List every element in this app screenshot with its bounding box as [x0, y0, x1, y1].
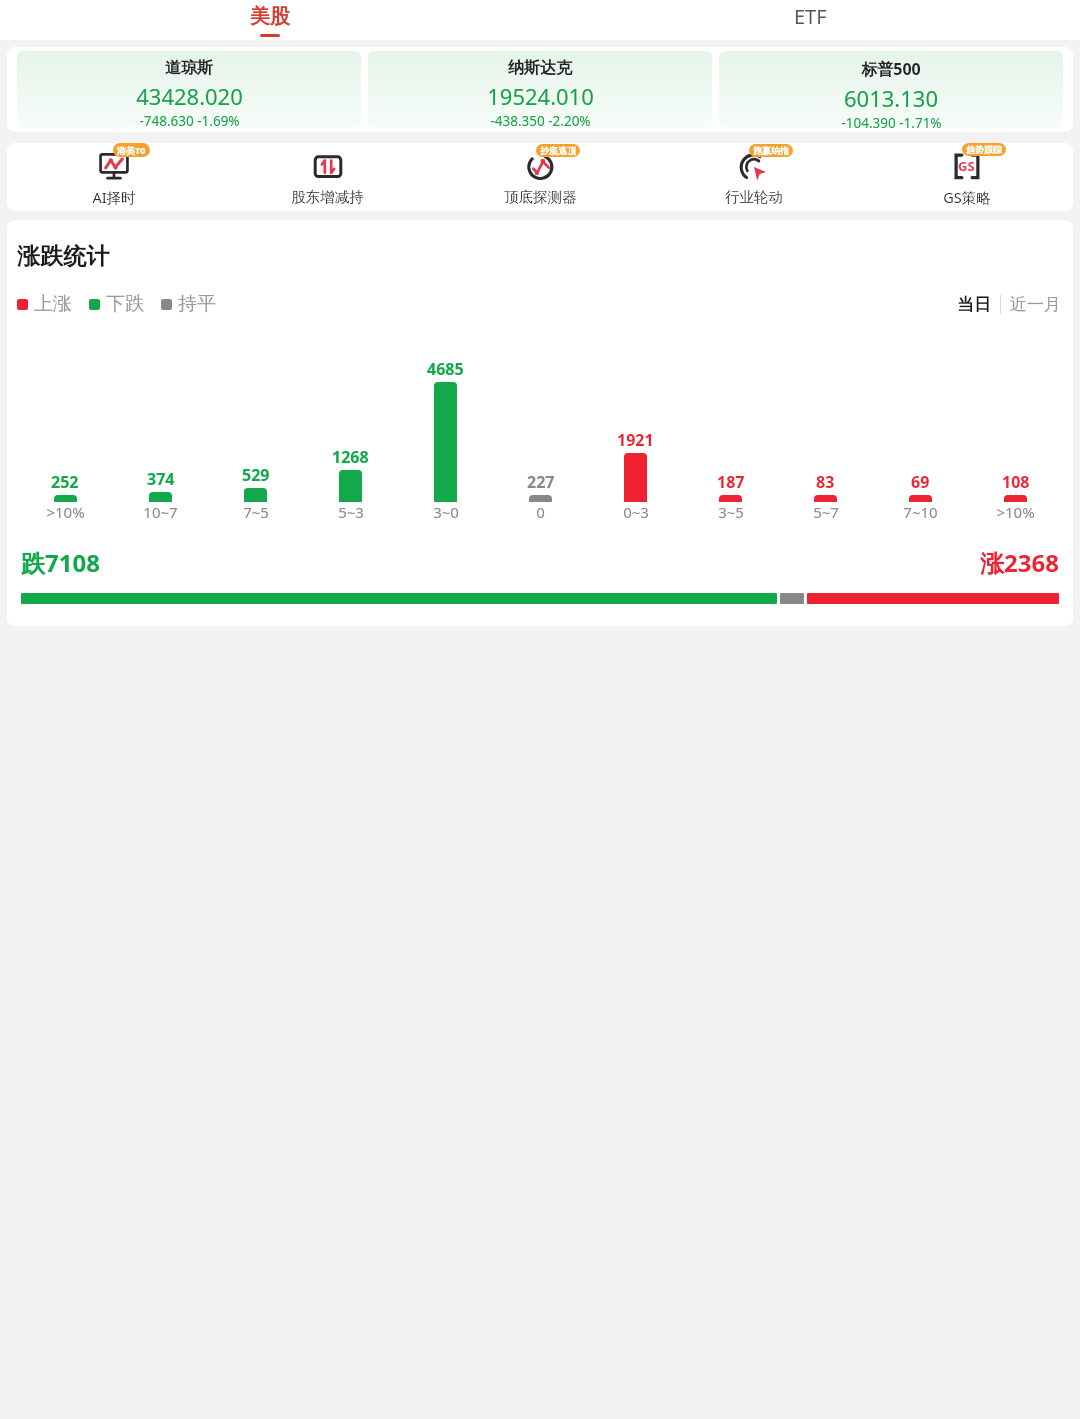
staticText: 趋势跟踪 [966, 144, 1002, 155]
staticText: 涨2368 [980, 546, 1059, 579]
staticText: 行业轮动 [725, 188, 783, 206]
staticText: 1268 [332, 446, 369, 468]
button[interactable]: 跑赢纳指 [647, 143, 860, 211]
staticText: -438.350 -2.20% [490, 112, 591, 128]
staticText: 道琼斯 [165, 58, 213, 78]
staticText: 5~3 [338, 502, 364, 522]
button[interactable]: ETF [540, 0, 1080, 40]
staticText: -748.630 -1.69% [139, 112, 240, 128]
staticText: 3~0 [433, 502, 459, 522]
staticText: 252 [51, 471, 79, 493]
staticText: 跌7108 [21, 546, 100, 579]
button[interactable]: 美股 [0, 0, 540, 40]
staticText: 顶底探测器 [504, 188, 577, 206]
staticText: GS [958, 157, 975, 175]
staticText: 当日 [957, 294, 991, 315]
staticText: 0~3 [623, 502, 649, 522]
staticText: 7~5 [243, 502, 269, 522]
staticText: 纳斯达克 [508, 58, 572, 78]
staticText: 4685 [427, 358, 464, 380]
button[interactable]: 当日 [955, 294, 993, 315]
staticText: 涨跌统计 [17, 242, 109, 271]
staticText: 1921 [617, 429, 654, 451]
staticText: 6013.130 [844, 83, 938, 113]
button[interactable]: 标普500 [719, 51, 1063, 128]
staticText: >10% [996, 502, 1035, 522]
staticText: 529 [242, 464, 270, 486]
staticText: 69 [911, 471, 930, 493]
staticText: 227 [527, 471, 555, 493]
button[interactable]: 纳斯达克 [368, 51, 712, 128]
staticText: 43428.020 [136, 81, 243, 111]
staticText: 108 [1002, 471, 1030, 493]
staticText: 近一月 [1010, 294, 1061, 315]
staticText: 下跌 [106, 292, 144, 316]
button[interactable]: 近一月 [1008, 294, 1063, 315]
staticText: 抄底逃顶 [540, 145, 576, 156]
staticText: 0 [536, 502, 545, 522]
staticText: 标普500 [861, 58, 921, 80]
button[interactable]: 抄底逃顶 [434, 143, 647, 211]
staticText: 83 [816, 471, 835, 493]
staticText: 5~7 [813, 502, 839, 522]
staticText: 跑赢纳指 [753, 145, 789, 156]
button[interactable]: 道琼斯 [17, 51, 361, 128]
staticText: 港美T0 [117, 144, 146, 156]
staticText: -104.390 -1.71% [841, 114, 942, 128]
staticText: 10~7 [143, 502, 178, 522]
button[interactable]: 股东增减持 [221, 143, 434, 211]
staticText: 上涨 [34, 292, 72, 316]
staticText: ETF [794, 3, 827, 30]
staticText: 持平 [178, 292, 216, 316]
staticText: AI择时 [92, 187, 136, 207]
staticText: 19524.010 [487, 81, 594, 111]
button[interactable]: 港美T0 [7, 143, 221, 211]
staticText: 股东增减持 [291, 188, 364, 206]
staticText: 374 [147, 468, 175, 490]
staticText: >10% [46, 502, 85, 522]
button[interactable]: GS [860, 143, 1073, 211]
staticText: 3~5 [718, 502, 744, 522]
staticText: 美股 [250, 4, 290, 29]
staticText: GS策略 [943, 187, 991, 207]
staticText: 7~10 [903, 502, 938, 522]
staticText: 187 [717, 471, 745, 493]
